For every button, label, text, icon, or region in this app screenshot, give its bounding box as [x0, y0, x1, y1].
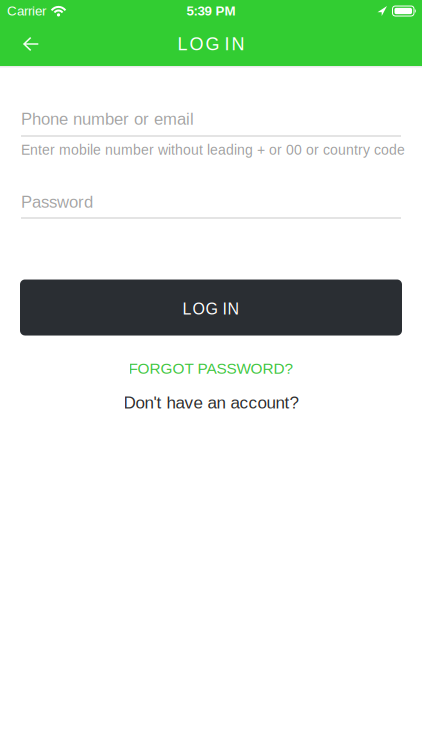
- staticText: FORGOT PASSWORD?: [128, 360, 293, 377]
- staticText: Password: [21, 193, 93, 211]
- staticText: Enter mobile number without leading + or…: [21, 142, 405, 158]
- button[interactable]: L O G I N: [20, 279, 402, 335]
- staticText: Phone number or email: [21, 110, 194, 128]
- button[interactable]: Phone number or email: [0, 108, 422, 136]
- staticText: 5:39 PM: [186, 4, 235, 18]
- button[interactable]: FORGOT PASSWORD?: [128, 359, 293, 377]
- staticText: L O G I N: [177, 34, 244, 54]
- staticText: Don't have an account?: [123, 393, 298, 412]
- button[interactable]: Back: [0, 23, 49, 65]
- button[interactable]: Password: [0, 191, 422, 218]
- button[interactable]: Don't have an account?: [123, 389, 298, 415]
- staticText: Carrier: [7, 4, 46, 18]
- staticText: L O G I N: [182, 300, 239, 318]
